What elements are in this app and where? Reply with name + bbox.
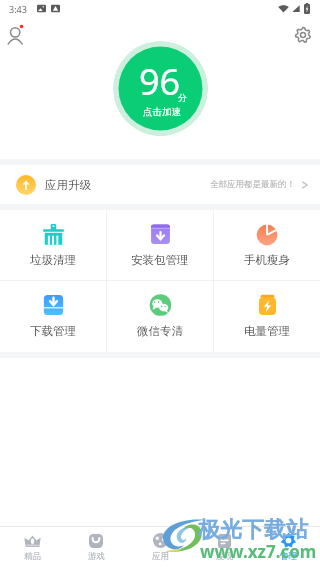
button[interactable]: 96 bbox=[113, 41, 208, 136]
button[interactable]: Settings bbox=[295, 27, 311, 43]
button[interactable]: 发现 bbox=[192, 527, 256, 568]
staticText: 极光下载站 bbox=[198, 516, 308, 544]
button[interactable]: 安装包管理 bbox=[107, 210, 213, 280]
staticText: 发现 bbox=[216, 551, 233, 562]
staticText: 3:43 bbox=[9, 3, 27, 15]
staticText: 分 bbox=[178, 92, 187, 103]
button[interactable]: 管理 bbox=[256, 527, 320, 568]
button[interactable]: 游戏 bbox=[64, 527, 128, 568]
button[interactable]: 电量管理 bbox=[214, 281, 320, 352]
button[interactable]: 应用 bbox=[128, 527, 192, 568]
staticText: 应用 bbox=[152, 551, 169, 562]
button[interactable]: 垃圾清理 bbox=[0, 210, 106, 280]
staticText: 微信专清 bbox=[137, 324, 183, 338]
button[interactable]: 下载管理 bbox=[0, 281, 106, 352]
staticText: 全部应用都是最新的！ bbox=[210, 179, 295, 190]
button[interactable]: 应用升级 bbox=[0, 165, 320, 204]
staticText: 下载管理 bbox=[30, 324, 76, 338]
staticText: 96 bbox=[139, 57, 181, 106]
staticText: 管理 bbox=[280, 551, 297, 562]
staticText: 应用升级 bbox=[45, 178, 91, 192]
button[interactable]: Account bbox=[4, 23, 30, 49]
staticText: 电量管理 bbox=[244, 324, 290, 338]
staticText: 手机瘦身 bbox=[244, 253, 290, 267]
staticText: 游戏 bbox=[88, 551, 105, 562]
button[interactable]: 微信专清 bbox=[107, 281, 213, 352]
staticText: www.xz7.com bbox=[200, 540, 317, 563]
staticText: 点击加速 bbox=[143, 106, 181, 118]
staticText: 精品 bbox=[24, 551, 41, 562]
button[interactable]: 手机瘦身 bbox=[214, 210, 320, 280]
staticText: 安装包管理 bbox=[131, 253, 189, 267]
staticText: 垃圾清理 bbox=[30, 253, 76, 267]
button[interactable]: 精品 bbox=[0, 527, 64, 568]
